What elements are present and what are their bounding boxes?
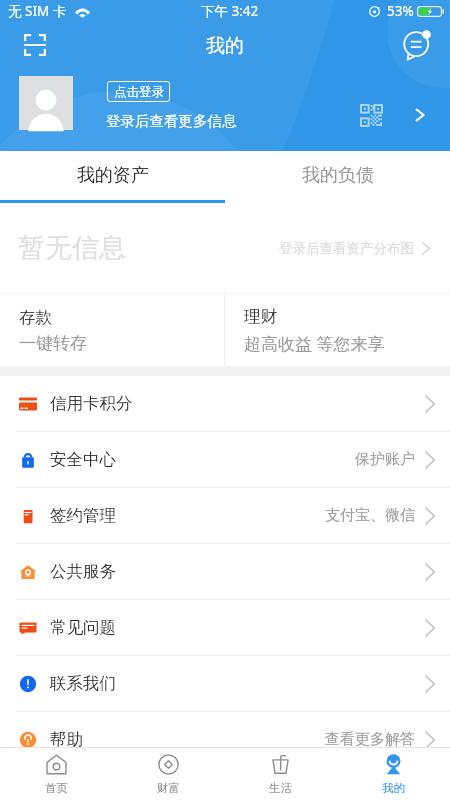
staticText: 超高收益 等您来享 (244, 332, 385, 355)
button[interactable]: 帮助 (0, 712, 450, 767)
staticText: 我的资产 (77, 164, 149, 187)
staticText: 支付宝、微信 (325, 506, 415, 525)
staticText: 理财 (244, 306, 277, 327)
staticText: 联系我们 (50, 673, 116, 694)
staticText: 我的 (206, 34, 244, 58)
staticText: 查看更多解答 (325, 730, 415, 749)
button[interactable]: 联系我们 (0, 656, 450, 711)
button[interactable]: 常见问题 (0, 600, 450, 655)
staticText: 无 SIM 卡 (8, 2, 67, 20)
button[interactable]: 登录后查看资产分布图 (279, 240, 430, 257)
staticText: 生活 (269, 781, 292, 795)
staticText: 保护账户 (355, 450, 415, 469)
button[interactable]: 理财 (225, 294, 450, 366)
staticText: 登录后查看资产分布图 (279, 240, 414, 257)
staticText: 我的 (382, 781, 405, 795)
staticText: 53% (387, 2, 414, 20)
staticText: 下午 3:42 (201, 2, 259, 20)
staticText: 公共服务 (50, 561, 116, 582)
staticText: 点击登录 (114, 84, 164, 100)
staticText: 登录后查看更多信息 (106, 112, 237, 130)
staticText: 安全中心 (50, 449, 116, 470)
button[interactable]: Messages (399, 26, 437, 64)
button[interactable]: QR code (354, 98, 388, 132)
button[interactable]: 我的资产 (0, 151, 225, 200)
staticText: 签约管理 (50, 505, 116, 526)
button[interactable]: 我的负债 (225, 151, 450, 200)
button[interactable]: 生活 (224, 748, 337, 800)
button[interactable]: 信用卡积分 (0, 376, 450, 431)
staticText: 一键转存 (19, 333, 87, 354)
staticText: 存款 (19, 307, 52, 328)
button[interactable]: 我的 (337, 748, 450, 800)
button[interactable]: 安全中心 (0, 432, 450, 487)
button[interactable]: 存款 (0, 294, 224, 366)
button[interactable]: 签约管理 (0, 488, 450, 543)
button[interactable]: 首页 (0, 748, 112, 800)
staticText: 财富 (157, 781, 180, 795)
staticText: 首页 (45, 781, 68, 795)
staticText: 暂无信息 (18, 231, 126, 265)
button[interactable]: Scan (16, 26, 54, 64)
staticText: 我的负债 (302, 164, 374, 187)
staticText: 信用卡积分 (50, 393, 133, 414)
button[interactable]: 点击登录 (0, 0, 450, 151)
button[interactable]: 点击登录 (107, 81, 170, 102)
staticText: 帮助 (50, 729, 83, 750)
button[interactable]: 公共服务 (0, 544, 450, 599)
button[interactable]: 财富 (112, 748, 224, 800)
staticText: 常见问题 (50, 617, 116, 638)
